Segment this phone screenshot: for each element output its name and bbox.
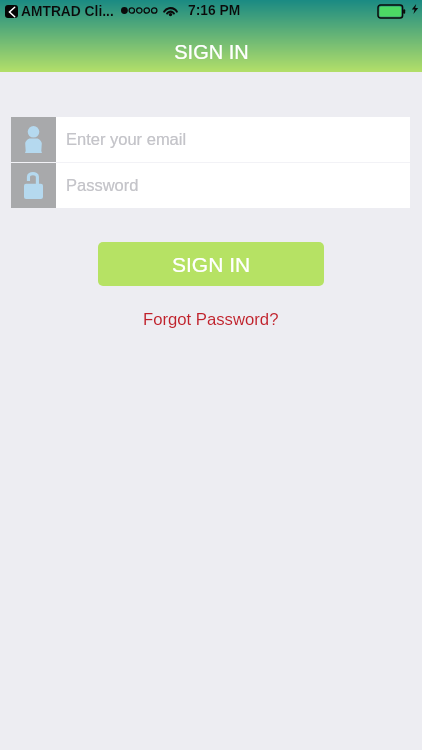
button[interactable]: SIGN IN xyxy=(98,242,324,286)
staticText: Password xyxy=(66,176,139,194)
button[interactable]: Forgot Password? xyxy=(0,306,422,332)
staticText: Forgot Password? xyxy=(143,310,279,329)
staticText: Enter your email xyxy=(66,130,187,148)
button[interactable]: Back xyxy=(5,5,18,18)
staticText: SIGN IN xyxy=(172,253,251,276)
staticText: SIGN IN xyxy=(174,41,249,63)
staticText: AMTRAD Cli... xyxy=(21,4,114,19)
staticText: 7:16 PM xyxy=(188,3,241,18)
